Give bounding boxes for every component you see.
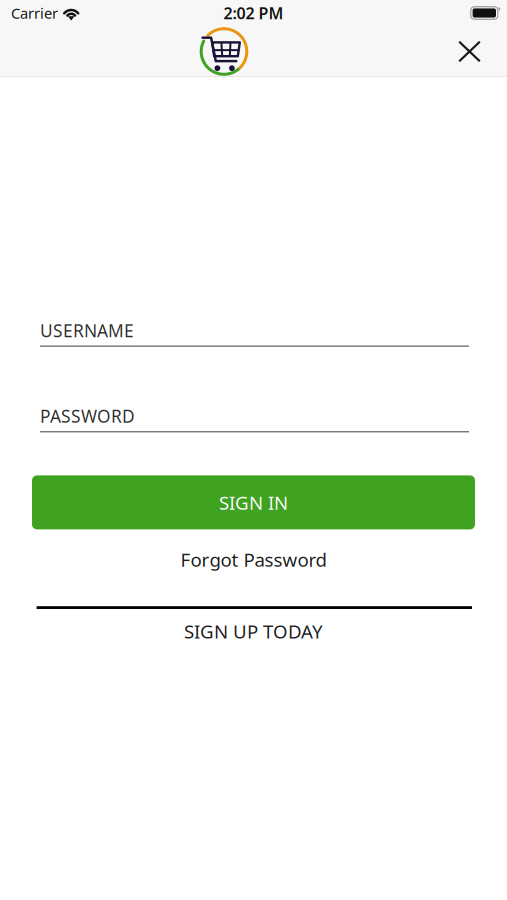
staticText: USERNAME bbox=[40, 319, 134, 342]
staticText: PASSWORD bbox=[40, 405, 135, 428]
staticText: SIGN UP TODAY bbox=[184, 619, 323, 644]
staticText: SIGN IN bbox=[219, 490, 288, 515]
button[interactable]: SIGN IN bbox=[32, 475, 475, 529]
staticText: Forgot Password bbox=[180, 547, 326, 572]
button[interactable]: Forgot Password bbox=[32, 539, 475, 579]
button[interactable]: Close bbox=[444, 26, 507, 76]
staticText: 2:02 PM bbox=[223, 2, 283, 24]
staticText: Carrier bbox=[11, 3, 58, 23]
button[interactable]: SIGN UP TODAY bbox=[32, 613, 475, 649]
